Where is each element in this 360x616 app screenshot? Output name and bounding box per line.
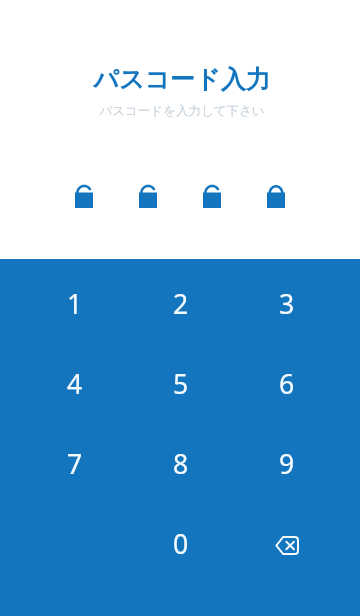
staticText: 9 <box>279 446 295 482</box>
staticText: 1 <box>67 286 83 322</box>
button[interactable]: 2 <box>128 264 234 344</box>
button[interactable]: 1 <box>22 264 128 344</box>
staticText: 0 <box>173 526 189 562</box>
staticText: パスコードを入力して下さい <box>99 103 265 119</box>
staticText: 6 <box>279 366 295 402</box>
button[interactable]: 6 <box>234 344 340 424</box>
button[interactable]: 9 <box>234 424 340 504</box>
staticText: 3 <box>279 286 295 322</box>
button[interactable]: 5 <box>128 344 234 424</box>
staticText: 5 <box>173 366 189 402</box>
button[interactable]: 4 <box>22 344 128 424</box>
staticText: 2 <box>173 286 189 322</box>
button[interactable]: 7 <box>22 424 128 504</box>
button[interactable]: Backspace <box>234 504 340 584</box>
button[interactable]: 8 <box>128 424 234 504</box>
staticText: パスコード入力 <box>93 64 271 95</box>
staticText: 7 <box>67 446 83 482</box>
button[interactable]: 0 <box>128 504 234 584</box>
other: Backspace <box>275 536 299 555</box>
staticText: 8 <box>173 446 189 482</box>
button[interactable]: 3 <box>234 264 340 344</box>
staticText: 4 <box>67 366 83 402</box>
